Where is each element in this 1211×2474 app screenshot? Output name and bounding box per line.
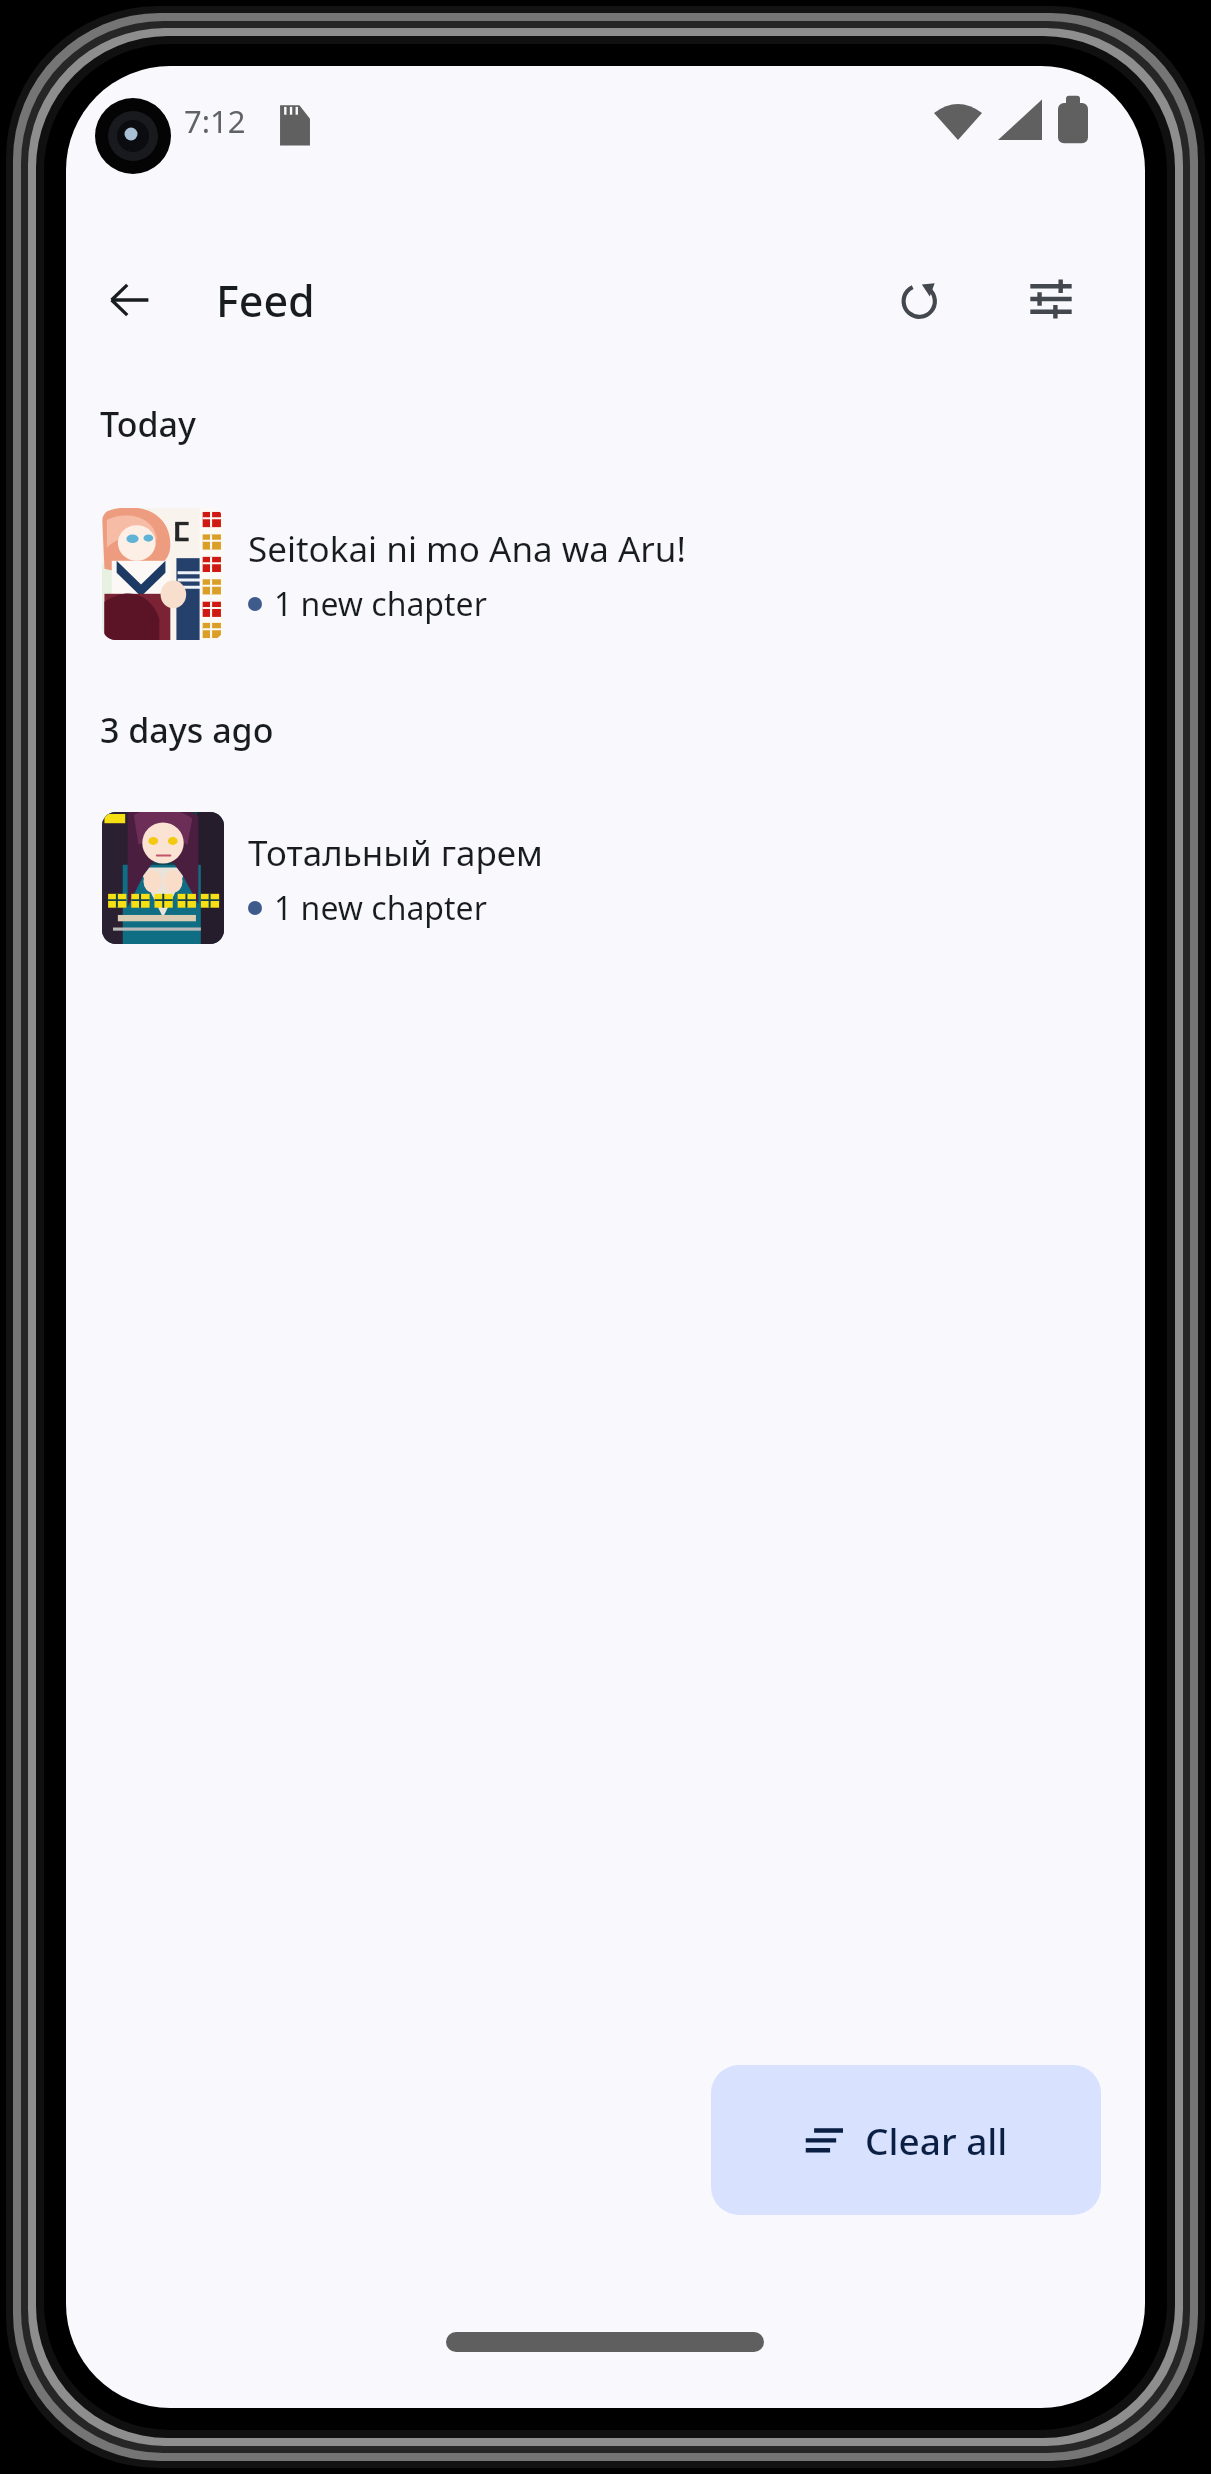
staticText: 7:12 — [184, 100, 246, 142]
staticText: Clear all — [865, 2115, 1008, 2165]
staticText: 1 new chapter — [274, 886, 487, 930]
button[interactable]: Тотальный гарем — [66, 798, 1145, 960]
staticText: Тотальный гарем — [248, 829, 543, 877]
staticText: 3 days ago — [100, 707, 274, 753]
button[interactable]: Seitokai ni mo Ana wa Aru! — [66, 494, 1145, 656]
button[interactable]: Back — [74, 244, 186, 356]
button[interactable]: Clear all — [711, 2065, 1101, 2215]
staticText: 1 new chapter — [274, 582, 487, 626]
staticText: Feed — [216, 271, 315, 330]
button[interactable]: Refresh — [864, 242, 978, 356]
staticText: Today — [100, 401, 196, 447]
button[interactable]: Filter settings — [994, 242, 1108, 356]
staticText: Seitokai ni mo Ana wa Aru! — [248, 525, 686, 573]
